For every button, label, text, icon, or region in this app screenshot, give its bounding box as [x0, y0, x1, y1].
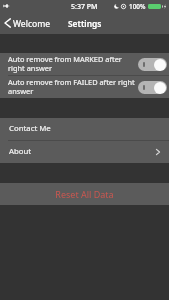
- button[interactable]: Toggle setting: [138, 58, 167, 71]
- button[interactable]: Welcome: [0, 16, 55, 32]
- button[interactable]: Auto remove from FAILED after right answ…: [0, 76, 169, 98]
- button[interactable]: Toggle setting: [138, 81, 167, 94]
- staticText: 100%: [129, 2, 146, 11]
- staticText: Welcome: [13, 18, 51, 30]
- staticText: 5:37 PM: [71, 2, 98, 12]
- staticText: Auto remove from MARKED after right answ…: [8, 54, 136, 73]
- staticText: Contact Me: [9, 123, 160, 134]
- staticText: Auto remove from FAILED after right answ…: [8, 77, 136, 96]
- staticText: Reset All Data: [55, 188, 114, 200]
- staticText: Settings: [68, 18, 102, 29]
- button[interactable]: About: [0, 141, 169, 163]
- button[interactable]: Reset All Data: [0, 183, 169, 205]
- staticText: About: [9, 146, 156, 157]
- button[interactable]: Auto remove from MARKED after right answ…: [0, 53, 169, 75]
- button[interactable]: Contact Me: [0, 118, 169, 140]
